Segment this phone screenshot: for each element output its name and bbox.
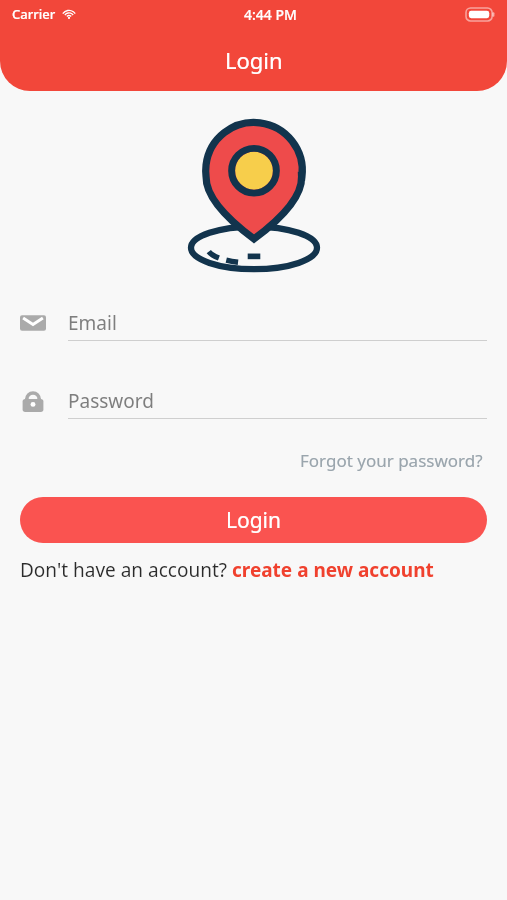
staticText: 4:44 PM — [244, 5, 297, 24]
button[interactable]: Don't have an account? create a new acco… — [20, 557, 487, 583]
button[interactable]: Email — [20, 305, 487, 352]
button[interactable]: Login — [20, 497, 487, 543]
button[interactable]: Password — [20, 383, 487, 430]
staticText: Password — [68, 388, 154, 414]
staticText: Don't have an account? create a new acco… — [20, 557, 434, 583]
other: Password — [20, 383, 68, 419]
staticText: Login — [226, 506, 282, 535]
staticText: Forgot your password? — [300, 449, 483, 472]
staticText: Login — [225, 45, 283, 75]
staticText: Carrier — [12, 5, 56, 23]
button[interactable]: Forgot your password? — [296, 445, 487, 476]
staticText: Email — [68, 310, 117, 336]
other: Email — [20, 305, 68, 341]
